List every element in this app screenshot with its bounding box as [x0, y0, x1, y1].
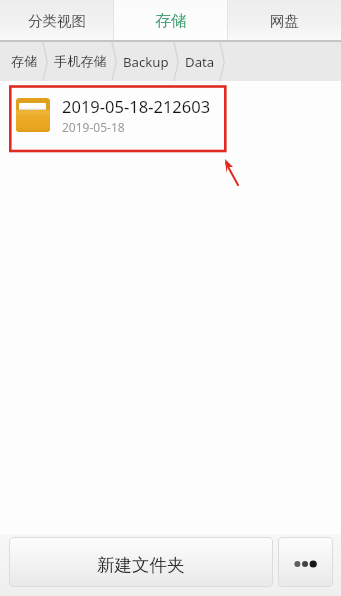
staticText: 存储	[155, 11, 187, 31]
button[interactable]: 2019-05-18-212603	[0, 89, 341, 145]
button[interactable]: Backup	[120, 42, 172, 81]
button[interactable]: 分类视图	[0, 0, 113, 42]
staticText: Backup	[123, 53, 169, 71]
staticText: 新建文件夹	[97, 554, 185, 576]
button[interactable]: 手机存储	[51, 42, 110, 81]
staticText: 2019-05-18-212603	[62, 95, 211, 117]
staticText: 分类视图	[28, 12, 86, 30]
staticText: 网盘	[270, 12, 299, 30]
staticText: 手机存储	[54, 53, 107, 70]
button[interactable]: 存储	[113, 0, 228, 42]
button[interactable]: More options	[278, 537, 333, 587]
button[interactable]: Data	[182, 42, 218, 81]
staticText: 存储	[11, 53, 38, 70]
button[interactable]: 存储	[8, 42, 41, 81]
staticText: 2019-05-18	[62, 119, 125, 135]
button[interactable]: 网盘	[228, 0, 341, 42]
staticText: Data	[185, 53, 215, 71]
button[interactable]: 新建文件夹	[9, 537, 273, 587]
